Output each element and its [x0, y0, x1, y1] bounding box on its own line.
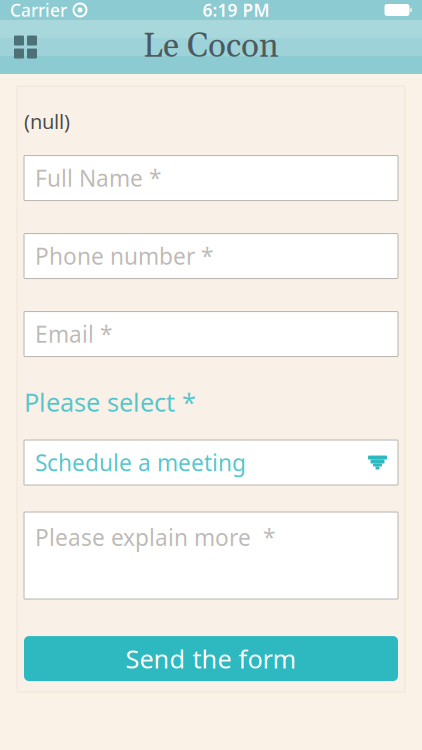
staticText: (null) [24, 108, 70, 135]
staticText: Email * [35, 319, 112, 349]
button[interactable]: Menu [0, 21, 51, 72]
staticText: 6:19 PM [202, 0, 269, 21]
button[interactable]: Please explain more * [24, 512, 398, 599]
button[interactable]: Email * [24, 312, 398, 357]
staticText: Carrier [10, 0, 67, 21]
button[interactable]: Phone number * [24, 234, 398, 279]
button[interactable]: Full Name * [24, 156, 398, 201]
staticText: Schedule a meeting [35, 447, 246, 478]
staticText: Please select * [24, 385, 196, 419]
staticText: Phone number * [35, 241, 213, 271]
staticText: Please explain more * [35, 522, 275, 552]
staticText: Send the form [125, 642, 296, 675]
staticText: Le Cocon [143, 26, 279, 68]
button[interactable]: Send the form [24, 636, 398, 681]
staticText: Full Name * [35, 163, 161, 193]
button[interactable]: Schedule a meeting [24, 440, 398, 485]
staticText [67, 0, 73, 25]
